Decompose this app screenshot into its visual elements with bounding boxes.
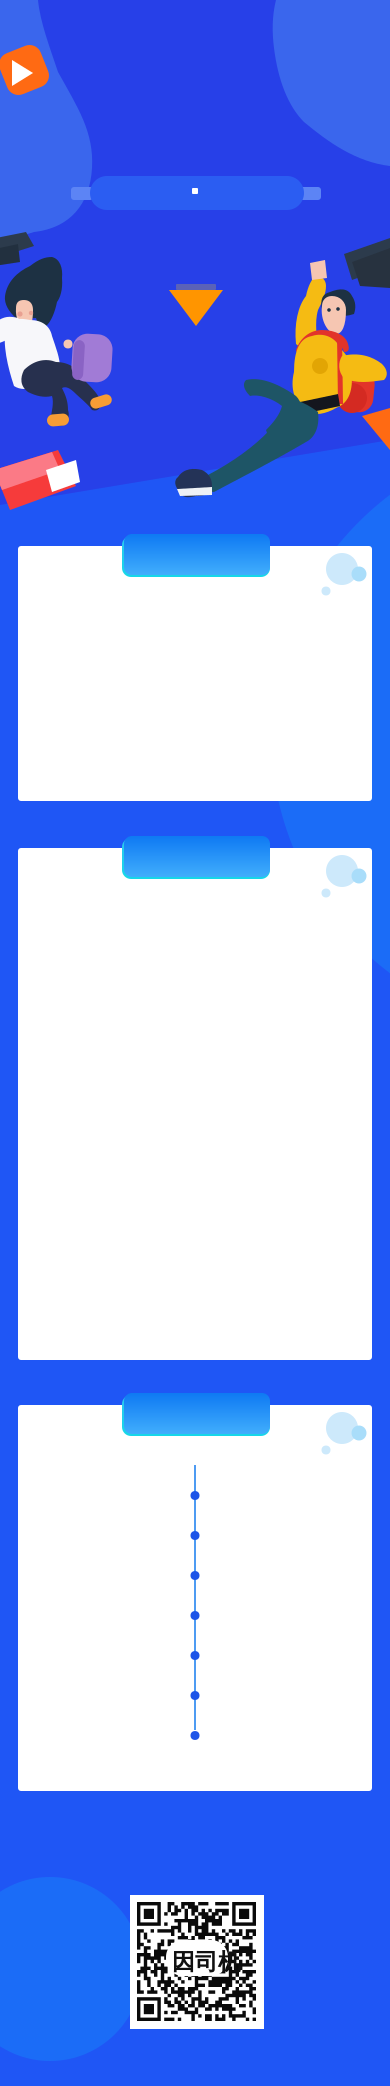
staticText: 因司机 (172, 1948, 241, 1976)
